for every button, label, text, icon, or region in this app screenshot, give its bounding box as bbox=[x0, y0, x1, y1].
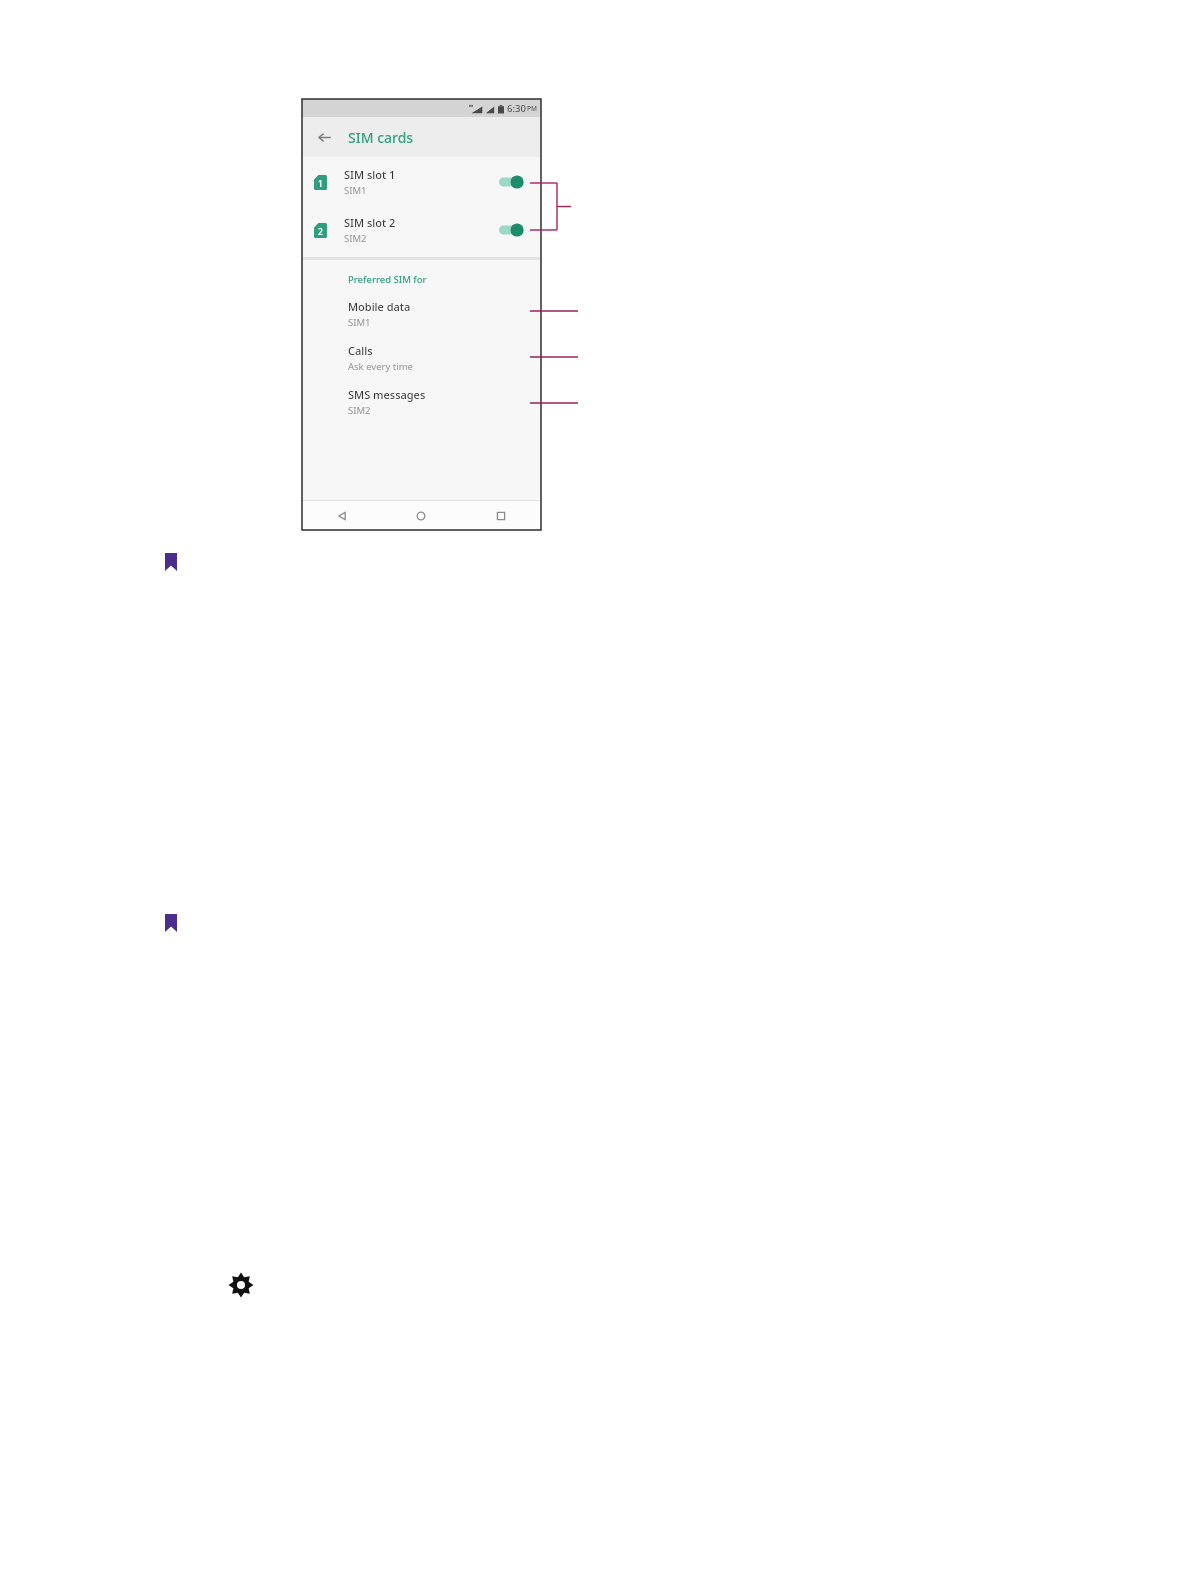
button[interactable]: Mobile data bbox=[302, 299, 541, 329]
staticText: Ask every time bbox=[348, 360, 413, 373]
staticText: SIM2 bbox=[348, 404, 371, 417]
button[interactable]: 1 bbox=[302, 163, 541, 201]
staticText: PM bbox=[527, 104, 537, 113]
staticText: Preferred SIM for bbox=[348, 273, 427, 286]
button[interactable]: Settings bbox=[228, 1272, 254, 1298]
staticText: SMS messages bbox=[348, 387, 426, 402]
staticText: Calls bbox=[348, 343, 373, 358]
staticText: Mobile data bbox=[348, 299, 411, 314]
button[interactable]: SMS messages bbox=[302, 387, 541, 417]
button[interactable]: Toggle SIM slot bbox=[499, 172, 529, 192]
button[interactable]: Recent apps bbox=[461, 501, 541, 530]
staticText: SIM1 bbox=[344, 184, 367, 197]
staticText: SIM slot 2 bbox=[344, 215, 396, 230]
button[interactable]: Navigate up bbox=[312, 125, 336, 149]
button[interactable]: Home bbox=[381, 501, 461, 530]
button[interactable]: Back bbox=[302, 501, 381, 530]
button[interactable]: 2 bbox=[302, 211, 541, 249]
button[interactable]: Calls bbox=[302, 343, 541, 373]
staticText: 6:30 bbox=[507, 102, 526, 115]
button[interactable]: Toggle SIM slot bbox=[499, 220, 529, 240]
staticText: SIM1 bbox=[348, 316, 371, 329]
staticText: SIM slot 1 bbox=[344, 167, 396, 182]
staticText: 1 bbox=[318, 178, 323, 190]
staticText: SIM2 bbox=[344, 232, 367, 245]
staticText: 2 bbox=[318, 226, 323, 238]
staticText: SIM cards bbox=[348, 128, 414, 147]
